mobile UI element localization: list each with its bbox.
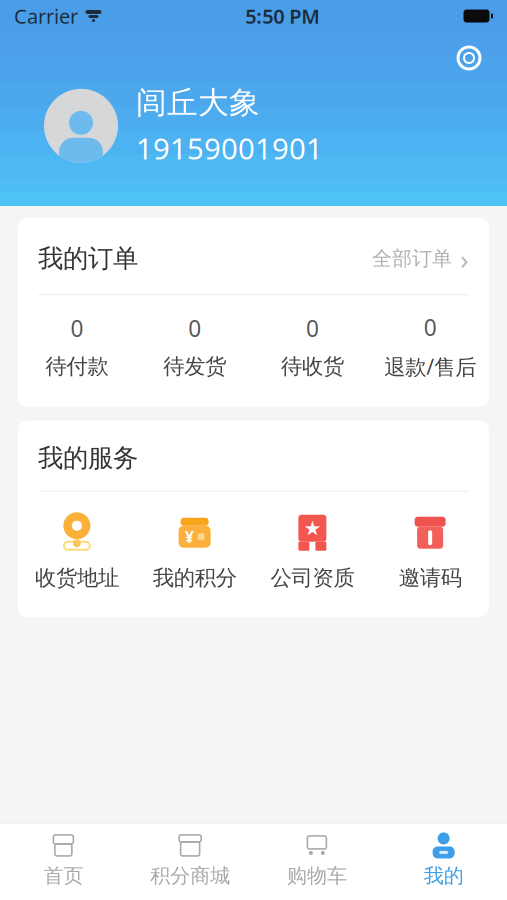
- staticText: 0: [424, 312, 437, 342]
- staticText: 全部订单: [372, 246, 452, 271]
- staticText: 我的订单: [38, 243, 138, 274]
- staticText: 收货地址: [35, 565, 119, 591]
- staticText: 0: [70, 313, 83, 343]
- button[interactable]: 购物车: [253, 833, 380, 888]
- button[interactable]: 收货地址: [18, 512, 136, 591]
- staticText: 邀请码: [399, 565, 462, 591]
- staticText: Carrier: [14, 3, 78, 29]
- staticText: 待发货: [163, 353, 226, 379]
- staticText: 0: [306, 313, 319, 343]
- button[interactable]: 首页: [0, 833, 127, 888]
- staticText: 购物车: [287, 863, 347, 888]
- staticText: 首页: [43, 863, 83, 888]
- staticText: ¥: [185, 526, 194, 547]
- staticText: 闾丘大象: [136, 84, 260, 122]
- button[interactable]: ¥: [136, 512, 254, 591]
- button[interactable]: 积分商城: [127, 833, 254, 888]
- button[interactable]: 0: [253, 313, 371, 379]
- button[interactable]: 邀请码: [371, 512, 489, 591]
- button[interactable]: ★: [253, 512, 371, 591]
- staticText: 5:50 PM: [245, 3, 320, 29]
- staticText: ★: [303, 517, 321, 540]
- staticText: 0: [188, 313, 201, 343]
- staticText: 我的积分: [153, 565, 237, 591]
- button[interactable]: 0: [136, 313, 254, 379]
- button[interactable]: Settings: [453, 42, 485, 74]
- staticText: 待付款: [45, 353, 108, 379]
- staticText: ›: [460, 240, 469, 277]
- button[interactable]: 0: [18, 313, 136, 379]
- button[interactable]: 全部订单: [372, 240, 469, 277]
- button[interactable]: 0: [371, 312, 489, 381]
- staticText: 我的服务: [38, 443, 138, 474]
- button[interactable]: 我的: [380, 833, 507, 888]
- staticText: 待收货: [281, 353, 344, 379]
- staticText: 公司资质: [270, 565, 354, 591]
- staticText: 19159001901: [136, 129, 323, 168]
- staticText: 退款/售后: [384, 352, 476, 381]
- staticText: 我的: [424, 863, 464, 888]
- staticText: 积分商城: [150, 863, 230, 888]
